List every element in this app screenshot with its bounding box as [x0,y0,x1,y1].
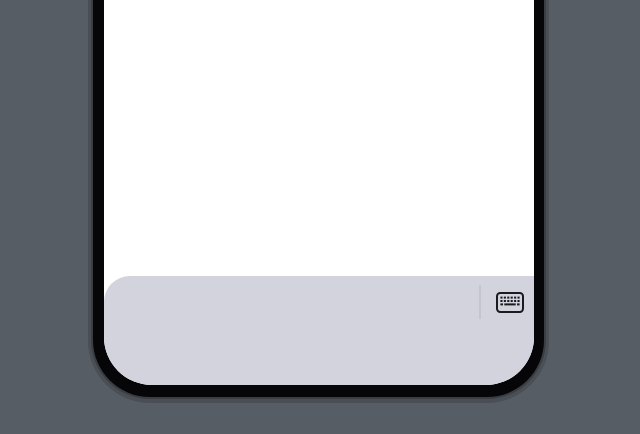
button[interactable]: Switch keyboard [483,278,534,326]
